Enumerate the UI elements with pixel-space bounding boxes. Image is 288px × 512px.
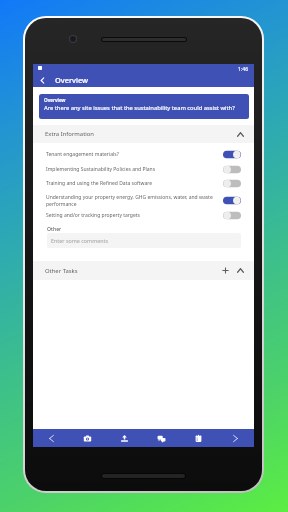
button[interactable]: Other Tasks [33, 261, 254, 280]
staticText: Are there any site issues that the susta… [44, 104, 235, 112]
staticText: Other [47, 226, 62, 233]
button[interactable]: Next [217, 429, 254, 447]
staticText: Enter some comments [51, 237, 109, 244]
button[interactable]: Extra Information [33, 125, 254, 143]
staticText: Overview [44, 97, 66, 103]
staticText: Implementing Sustainability Policies and… [46, 166, 216, 173]
staticText: Understanding your property energy, GHG … [46, 194, 216, 207]
button[interactable]: Enter some comments [47, 233, 241, 248]
button[interactable]: Training and using the Refined Data soft… [33, 176, 254, 190]
button[interactable]: Understanding your property energy, GHG … [33, 193, 254, 207]
button[interactable]: Back [34, 73, 51, 87]
staticText: Overview [55, 75, 89, 85]
button[interactable]: Previous [33, 429, 69, 447]
staticText: Training and using the Refined Data soft… [46, 180, 216, 187]
staticText: 1:46 [238, 65, 249, 72]
button[interactable]: Implementing Sustainability Policies and… [33, 162, 254, 176]
button[interactable]: Setting and/or tracking property targets [33, 208, 254, 222]
button[interactable]: Tasks [180, 429, 217, 447]
button[interactable]: Camera [69, 429, 106, 447]
staticText: Extra Information [45, 130, 94, 138]
button[interactable]: Comments [143, 429, 180, 447]
staticText: Setting and/or tracking property targets [46, 212, 216, 219]
button[interactable]: Tenant engagement materials? [33, 147, 254, 161]
staticText: Tenant engagement materials? [46, 151, 216, 158]
button[interactable]: Upload [106, 429, 143, 447]
staticText: Other Tasks [45, 267, 78, 275]
button[interactable]: Overview [39, 94, 249, 119]
